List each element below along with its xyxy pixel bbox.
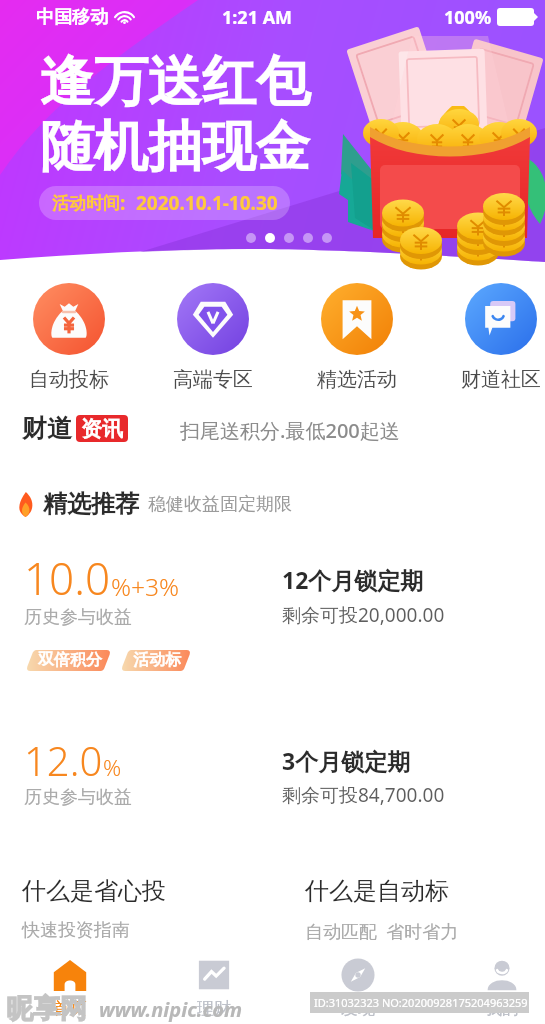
staticText: 精选活动 (317, 367, 397, 392)
staticText: 财道 (22, 413, 72, 444)
staticText: 扫尾送积分.最低200起送 (180, 417, 400, 444)
staticText: 精选推荐 (43, 489, 139, 519)
staticText: 100% (444, 5, 492, 30)
staticText: 稳健收益固定期限 (148, 493, 292, 516)
staticText: 12个月锁定期 (282, 564, 424, 595)
staticText: www.nipic.com (99, 996, 243, 1023)
button[interactable]: 财道社区 (453, 283, 545, 392)
button[interactable]: 10.0 (0, 548, 545, 713)
staticText: ID:31032323 NO:20200928175204963259 (314, 995, 528, 1010)
staticText: 12.0 (24, 733, 103, 787)
staticText: 历史参与收益 (24, 606, 132, 629)
staticText: 中国移动 (36, 6, 108, 29)
staticText: 财道社区 (461, 367, 541, 392)
button[interactable]: 首页 (26, 952, 114, 1019)
staticText: : (120, 190, 136, 216)
staticText: 首页 (53, 998, 87, 1019)
button[interactable]: 理财 (170, 952, 258, 1019)
staticText: 剩余可投20,000.00 (282, 602, 445, 628)
staticText: 历史参与收益 (24, 786, 132, 809)
staticText: 快速投资指南 (22, 919, 130, 942)
staticText: 活动标 (133, 650, 181, 670)
button[interactable]: 什么是自动标 (305, 876, 459, 944)
staticText: 自动匹配 省时省力 (305, 919, 459, 944)
button[interactable]: 发现 (314, 952, 402, 1019)
staticText: 10.0 (24, 548, 111, 608)
staticText: 昵享网 (6, 992, 87, 1024)
button[interactable]: 我的 (458, 952, 545, 1019)
staticText: 逢万送红包 (40, 48, 310, 116)
staticText: 高端专区 (173, 367, 253, 392)
staticText: 自动投标 (29, 367, 109, 392)
button[interactable]: 精选活动 (309, 283, 405, 392)
button[interactable]: 活动时间 (39, 186, 290, 220)
staticText: 资讯 (81, 416, 123, 442)
staticText: 我的 (485, 998, 519, 1019)
button[interactable]: 高端专区 (165, 283, 261, 392)
staticText: %+3% (111, 570, 180, 604)
staticText: 3个月锁定期 (282, 745, 411, 776)
staticText: 什么是省心投 (22, 876, 166, 906)
button[interactable]: 什么是省心投 (22, 876, 166, 942)
button[interactable]: 财道 (22, 413, 128, 444)
staticText: 1:21 AM (222, 5, 293, 30)
staticText: 发现 (341, 998, 375, 1019)
staticText: % (103, 752, 122, 783)
staticText: 剩余可投84,700.00 (282, 782, 445, 808)
staticText: 活动时间 (52, 193, 120, 214)
staticText: 什么是自动标 (305, 876, 449, 906)
staticText: 理财 (197, 998, 231, 1019)
button[interactable]: 12.0 (0, 733, 545, 823)
staticText: 随机抽现金 (40, 113, 310, 181)
staticText: 2020.10.1-10.30 (136, 190, 278, 216)
staticText: 双倍积分 (38, 650, 102, 670)
button[interactable]: 自动投标 (21, 283, 117, 392)
